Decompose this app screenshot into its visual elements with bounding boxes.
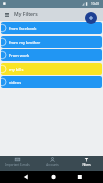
staticText: Filters <box>82 163 91 167</box>
button[interactable]: from facebook <box>1 22 102 34</box>
staticText: videos <box>9 80 22 85</box>
staticText: From work <box>9 53 30 58</box>
button[interactable]: videos <box>1 76 102 88</box>
button[interactable]: Important E-mails <box>0 156 35 171</box>
staticText: Important E-mails <box>5 163 30 167</box>
staticText: from facebook <box>9 26 37 31</box>
staticText: from my brother <box>9 40 41 45</box>
staticText: My Filters <box>14 11 38 18</box>
button[interactable]: Filters <box>69 156 103 171</box>
button[interactable]: my bills <box>1 63 102 75</box>
staticText: Accounts <box>46 163 59 167</box>
staticText: my bills <box>9 67 24 72</box>
button[interactable]: from my brother <box>1 36 102 48</box>
button[interactable]: Add filter <box>85 12 97 24</box>
button[interactable]: Accounts <box>35 156 69 171</box>
button[interactable]: Menu <box>0 8 13 21</box>
button[interactable]: From work <box>1 49 102 61</box>
staticText: 10:48 <box>91 2 99 6</box>
